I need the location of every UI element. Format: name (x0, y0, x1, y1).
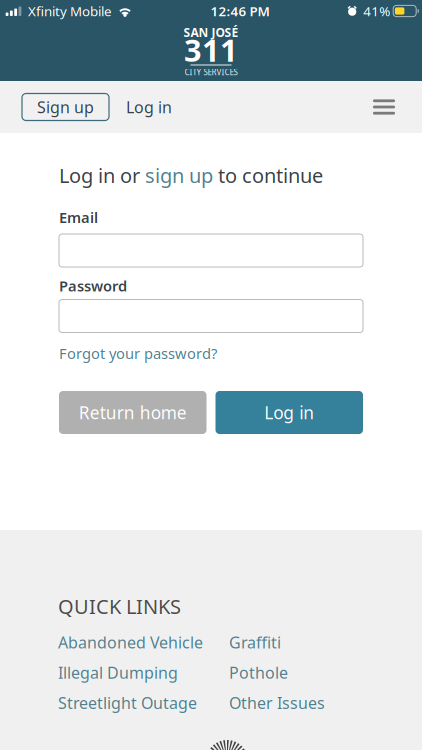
staticText: QUICK LINKS (58, 593, 181, 620)
button[interactable]: Return home (59, 391, 206, 434)
staticText: Sign up (37, 96, 94, 118)
staticText: Streetlight Outage (58, 692, 197, 713)
staticText: Forgot your password? (59, 343, 217, 363)
staticText: Log in (126, 96, 172, 118)
staticText: sign up (145, 162, 213, 189)
staticText: Log in or (59, 162, 145, 189)
staticText: 311 (184, 29, 238, 70)
staticText: Pothole (229, 662, 288, 683)
staticText: CITY SERVICES (184, 67, 237, 77)
staticText: Password (59, 276, 127, 295)
staticText: Return home (79, 401, 187, 424)
staticText: SAN JOSÉ (183, 24, 238, 40)
staticText: Graffiti (229, 632, 281, 653)
button[interactable]: Forgot your password? (59, 343, 217, 363)
button[interactable]: Graffiti (229, 632, 281, 653)
button[interactable]: Sign up (22, 93, 109, 120)
button[interactable]: Menu (363, 90, 405, 124)
staticText: 12:46 PM (211, 2, 270, 20)
staticText: Xfinity Mobile (28, 2, 112, 20)
button[interactable]: Abandoned Vehicle (58, 632, 203, 653)
button[interactable]: Log in (215, 391, 363, 434)
button[interactable]: Pothole (229, 662, 288, 683)
staticText: Log in (264, 401, 314, 424)
staticText: Illegal Dumping (58, 662, 178, 683)
staticText: Email (59, 208, 98, 227)
staticText: Other Issues (229, 692, 325, 713)
staticText: Abandoned Vehicle (58, 632, 203, 653)
button[interactable]: Other Issues (229, 692, 325, 713)
button[interactable]: sign up (145, 162, 213, 189)
button[interactable]: Streetlight Outage (58, 692, 197, 713)
staticText: 41% (363, 2, 390, 20)
button[interactable]: Log in (109, 93, 189, 120)
staticText: to continue (213, 162, 323, 189)
button[interactable]: Illegal Dumping (58, 662, 178, 683)
